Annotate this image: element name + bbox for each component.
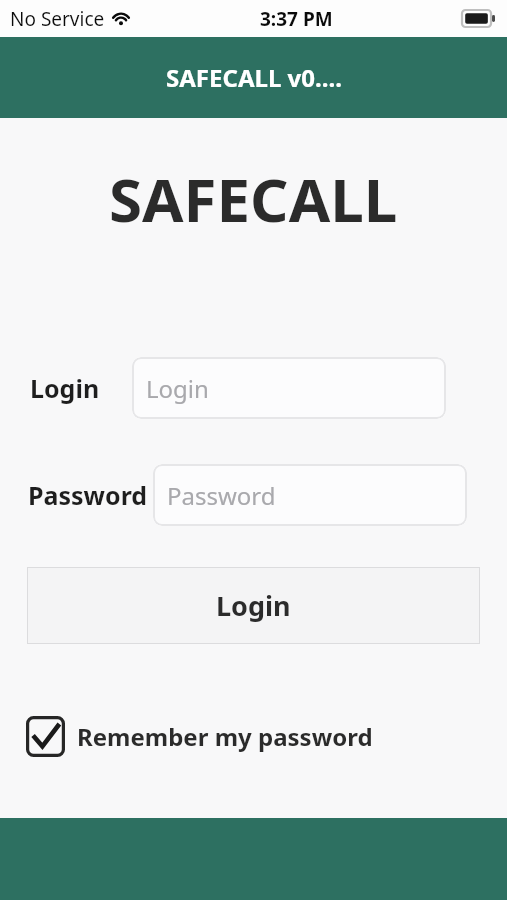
button[interactable]: Login [27,567,480,644]
staticText: Password [28,478,148,512]
button[interactable]: Password [153,464,467,526]
staticText: Login [146,372,209,405]
staticText: Login [30,371,100,405]
staticText: SAFECALL [109,158,398,240]
button[interactable]: Remember my password checkbox [26,708,373,764]
button[interactable]: Login [132,357,446,419]
staticText: No Service [10,6,105,32]
staticText: 3:37 PM [260,6,333,32]
staticText: SAFECALL v0.... [166,61,342,94]
staticText: Remember my password [77,720,373,753]
staticText: Password [167,479,276,512]
other: Remember my password checkbox [26,716,65,757]
staticText: Login [216,587,291,624]
